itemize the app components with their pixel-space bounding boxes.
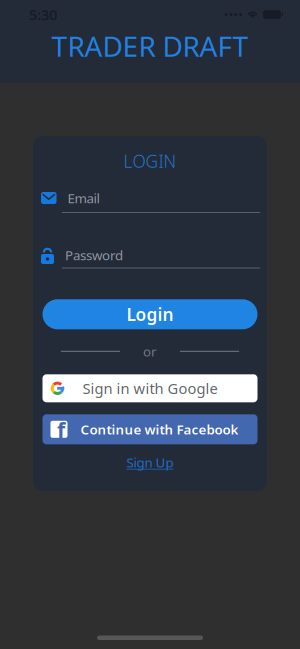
- staticText: Login: [126, 303, 173, 326]
- staticText: f: [57, 416, 65, 444]
- staticText: TRADER DRAFT: [51, 27, 248, 65]
- button[interactable]: f: [42, 414, 257, 444]
- button[interactable]: Login: [42, 299, 257, 329]
- staticText: or: [143, 342, 157, 360]
- button[interactable]: Sign in with Google: [42, 374, 257, 402]
- staticText: Continue with Facebook: [80, 420, 238, 438]
- staticText: Password: [65, 246, 123, 264]
- button[interactable]: Email: [33, 190, 267, 213]
- staticText: Sign in with Google: [82, 379, 217, 398]
- button[interactable]: Sign Up: [126, 454, 173, 470]
- button[interactable]: Password: [33, 247, 267, 268]
- staticText: LOGIN: [123, 149, 176, 172]
- staticText: Sign Up: [126, 453, 173, 471]
- staticText: 5:30: [29, 5, 57, 24]
- staticText: Email: [67, 189, 99, 207]
